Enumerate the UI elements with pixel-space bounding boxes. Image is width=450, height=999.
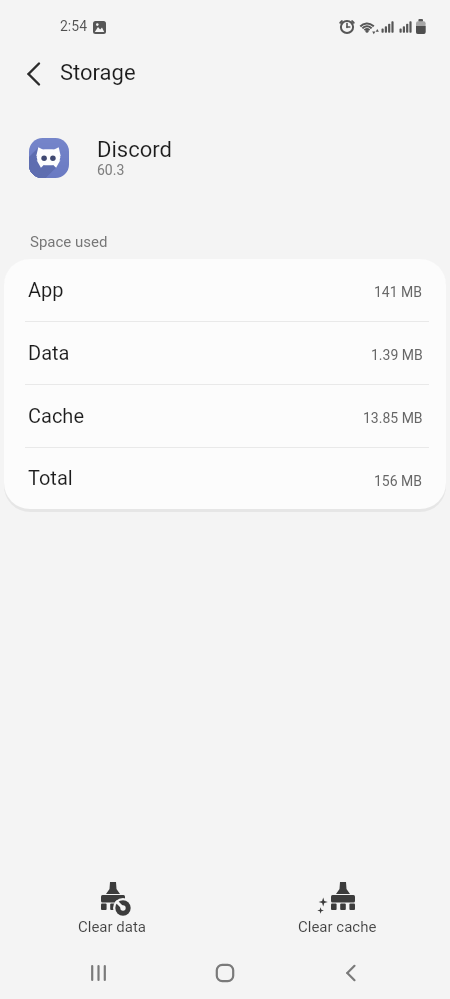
- staticText: Storage: [60, 60, 136, 86]
- staticText: 141 MB: [374, 284, 423, 300]
- staticText: 2:54: [60, 18, 87, 34]
- staticText: Space used: [30, 233, 108, 251]
- button[interactable]: [288, 947, 414, 999]
- button[interactable]: [36, 947, 162, 999]
- staticText: Discord: [97, 137, 172, 163]
- button[interactable]: Clear cache: [225, 880, 450, 942]
- button[interactable]: [162, 947, 288, 999]
- button[interactable]: Data: [4, 322, 446, 384]
- staticText: Total: [28, 466, 73, 489]
- staticText: 1.39 MB: [371, 347, 423, 363]
- button[interactable]: Cache: [4, 385, 446, 447]
- staticText: Clear data: [78, 918, 147, 936]
- staticText: Clear cache: [298, 918, 377, 936]
- staticText: 13.85 MB: [363, 410, 423, 426]
- staticText: 60.3: [97, 162, 125, 178]
- staticText: 156 MB: [374, 473, 423, 489]
- staticText: Data: [28, 341, 70, 364]
- button[interactable]: App: [4, 259, 446, 321]
- button[interactable]: Clear data: [0, 880, 225, 942]
- staticText: App: [28, 278, 64, 301]
- staticText: Cache: [28, 404, 84, 427]
- button[interactable]: [14, 54, 56, 94]
- button[interactable]: Total: [4, 448, 446, 509]
